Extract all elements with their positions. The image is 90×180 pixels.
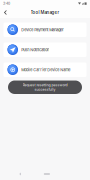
button[interactable]: Back — [1, 8, 10, 17]
button[interactable]: Push Notification — [3, 42, 86, 57]
staticText: Mobile Carrier Device Name — [21, 67, 70, 72]
button[interactable]: Mobile Carrier Device Name — [3, 62, 86, 77]
button[interactable]: Device Payment Manager — [3, 22, 86, 37]
staticText: 3:40 — [3, 1, 10, 6]
button[interactable]: Home — [40, 170, 54, 178]
button[interactable]: Back — [15, 169, 25, 179]
staticText: Request resetting password — [22, 83, 67, 87]
staticText: Push Notification — [21, 47, 49, 52]
staticText: successfully — [34, 87, 55, 92]
staticText: Device Payment Manager — [21, 27, 63, 32]
staticText: Tool Manager — [30, 10, 59, 15]
